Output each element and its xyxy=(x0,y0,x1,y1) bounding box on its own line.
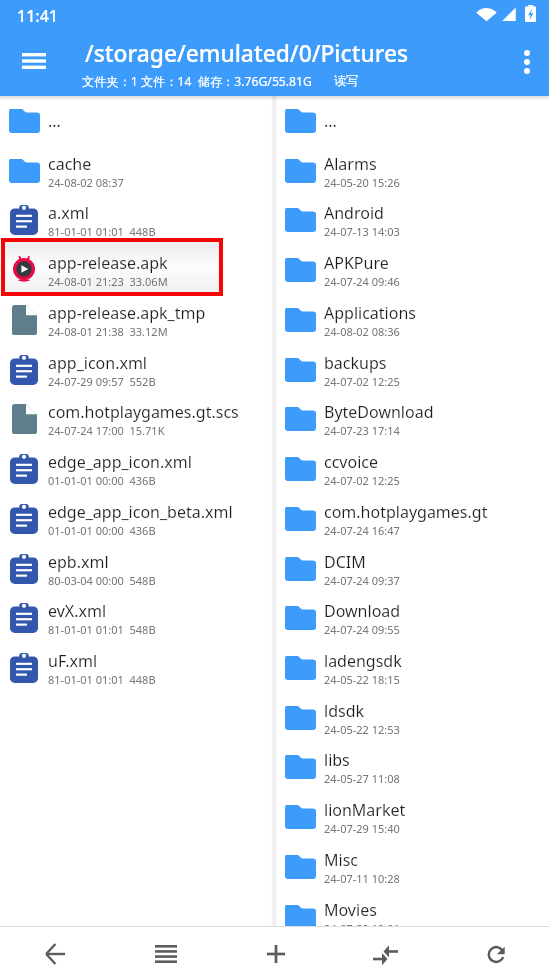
staticText: 81-01-01 01:01 448B xyxy=(48,672,156,687)
staticText: 24-07-11 10:28 xyxy=(324,871,400,886)
button[interactable]: Android xyxy=(276,195,549,245)
button[interactable]: Misc xyxy=(276,842,549,892)
staticText: 24-05-22 12:53 xyxy=(324,722,400,737)
button[interactable]: cache xyxy=(0,146,276,196)
button[interactable]: Back xyxy=(0,927,109,980)
staticText: 11:41 xyxy=(17,5,58,27)
staticText: 24-08-02 08:36 xyxy=(324,324,400,339)
staticText: lionMarket xyxy=(324,799,406,821)
staticText: 80-03-04 00:00 548B xyxy=(48,573,156,588)
staticText: ByteDownload xyxy=(324,401,434,423)
staticText: app-release.apk_tmp xyxy=(48,302,206,324)
staticText: cache xyxy=(48,153,92,175)
button[interactable]: app-release.apk xyxy=(0,245,276,295)
staticText: APKPure xyxy=(324,252,389,274)
button[interactable]: ldsdk xyxy=(276,693,549,743)
staticText: epb.xml xyxy=(48,551,109,573)
staticText: 24-07-29 15:40 xyxy=(324,821,400,836)
button[interactable]: ladengsdk xyxy=(276,643,549,693)
staticText: 24-07-29 09:57 552B xyxy=(48,374,156,389)
staticText: app-release.apk xyxy=(48,252,168,274)
staticText: 24-05-27 11:08 xyxy=(324,771,400,786)
staticText: ldsdk xyxy=(324,700,365,722)
button[interactable]: lionMarket xyxy=(276,792,549,842)
button[interactable]: Add xyxy=(219,927,329,980)
staticText: 01-01-01 00:00 436B xyxy=(48,523,156,538)
staticText: 24-08-01 21:23 33.06M xyxy=(48,274,168,289)
staticText: edge_app_icon_beta.xml xyxy=(48,501,233,523)
staticText: 24-07-24 09:37 xyxy=(324,573,400,588)
staticText: com.hotplaygames.gt.scs xyxy=(48,401,239,423)
button[interactable]: ... xyxy=(276,96,549,146)
button[interactable]: edge_app_icon_beta.xml xyxy=(0,494,276,544)
staticText: 24-07-13 14:03 xyxy=(324,224,400,239)
button[interactable]: libs xyxy=(276,742,549,792)
staticText: a.xml xyxy=(48,202,89,224)
staticText: /storage/emulated/0/Pictures xyxy=(85,38,409,69)
button[interactable]: ByteDownload xyxy=(276,394,549,444)
button[interactable]: com.hotplaygames.gt xyxy=(276,494,549,544)
button[interactable]: Refresh xyxy=(439,927,549,980)
staticText: 24-07-24 16:47 xyxy=(324,523,400,538)
button[interactable]: edge_app_icon.xml xyxy=(0,444,276,494)
button[interactable]: Menu xyxy=(10,37,58,85)
button[interactable]: Collapse xyxy=(329,927,439,980)
button[interactable]: Movies xyxy=(276,892,549,942)
staticText: DCIM xyxy=(324,551,366,573)
staticText: edge_app_icon.xml xyxy=(48,451,192,473)
staticText: 24-08-01 21:38 33.12M xyxy=(48,324,168,339)
staticText: 24-05-20 15:26 xyxy=(324,175,400,190)
staticText: 24-07-02 12:25 xyxy=(324,473,400,488)
staticText: 24-07-30 12:01 xyxy=(324,921,400,936)
staticText: Android xyxy=(324,202,384,224)
staticText: 24-07-24 09:46 xyxy=(324,274,400,289)
staticText: Alarms xyxy=(324,153,377,175)
button[interactable]: backups xyxy=(276,345,549,395)
button[interactable]: uF.xml xyxy=(0,643,276,693)
staticText: ladengsdk xyxy=(324,650,402,672)
button[interactable]: DCIM xyxy=(276,544,549,594)
button[interactable]: app_icon.xml xyxy=(0,345,276,395)
button[interactable]: Applications xyxy=(276,295,549,345)
staticText: 24-07-24 09:55 xyxy=(324,622,400,637)
staticText: ... xyxy=(324,110,337,132)
button[interactable]: Sort xyxy=(109,927,219,980)
staticText: 01-01-01 00:00 436B xyxy=(48,473,156,488)
staticText: com.hotplaygames.gt xyxy=(324,501,488,523)
staticText: app_icon.xml xyxy=(48,352,147,374)
staticText: 81-01-01 01:01 448B xyxy=(48,224,156,239)
staticText: evX.xml xyxy=(48,600,107,622)
staticText: 24-07-02 12:25 xyxy=(324,374,400,389)
button[interactable]: ccvoice xyxy=(276,444,549,494)
button[interactable]: epb.xml xyxy=(0,544,276,594)
button[interactable]: More options xyxy=(504,39,549,85)
staticText: backups xyxy=(324,352,387,374)
button[interactable]: APKPure xyxy=(276,245,549,295)
staticText: uF.xml xyxy=(48,650,98,672)
staticText: Download xyxy=(324,600,401,622)
button[interactable]: ... xyxy=(0,96,276,146)
staticText: ... xyxy=(48,110,61,132)
staticText: Misc xyxy=(324,849,358,871)
staticText: 24-05-22 18:15 xyxy=(324,672,400,687)
button[interactable]: com.hotplaygames.gt.scs xyxy=(0,394,276,444)
staticText: 24-07-23 17:14 xyxy=(324,423,400,438)
staticText: 81-01-01 01:01 548B xyxy=(48,622,156,637)
staticText: Applications xyxy=(324,302,416,324)
staticText: Movies xyxy=(324,899,377,921)
button[interactable]: Download xyxy=(276,593,549,643)
staticText: ccvoice xyxy=(324,451,379,473)
staticText: 文件夹：1 文件：14 储存：3.76G/55.81G xyxy=(82,73,312,90)
button[interactable]: Alarms xyxy=(276,146,549,196)
staticText: 读写 xyxy=(334,73,359,88)
staticText: 24-07-24 17:00 15.71K xyxy=(48,423,165,438)
staticText: libs xyxy=(324,749,350,771)
button[interactable]: a.xml xyxy=(0,195,276,245)
button[interactable]: app-release.apk_tmp xyxy=(0,295,276,345)
staticText: 24-08-02 08:37 xyxy=(48,175,124,190)
button[interactable]: evX.xml xyxy=(0,593,276,643)
